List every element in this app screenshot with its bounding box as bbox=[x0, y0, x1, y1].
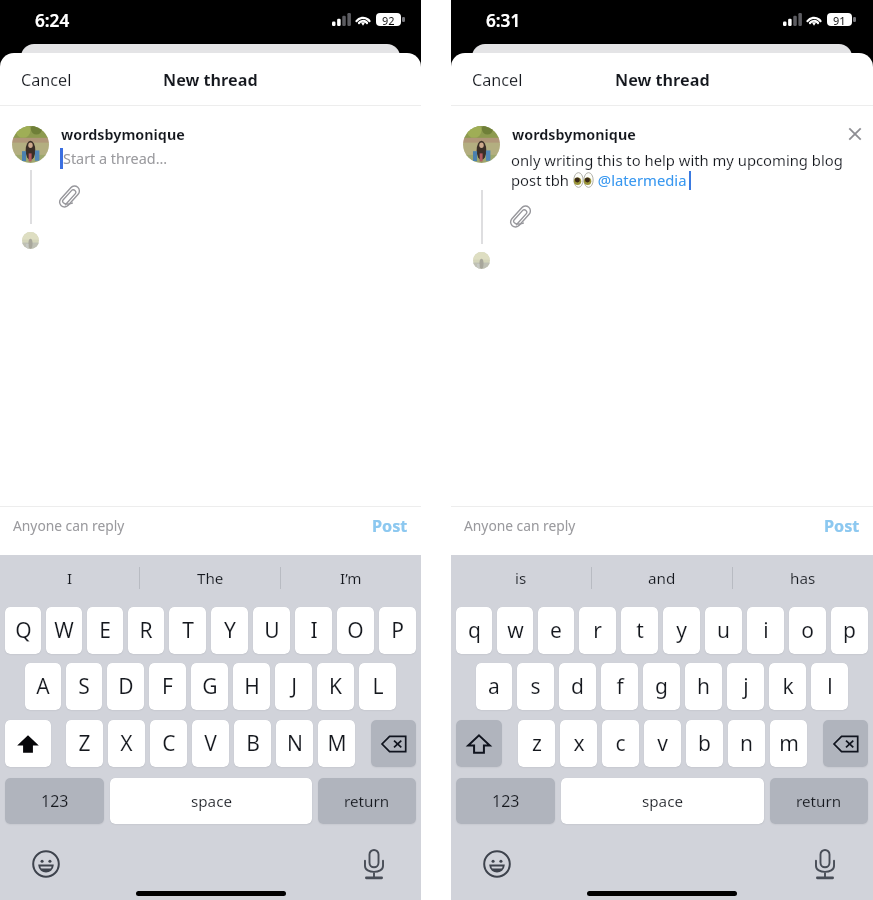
button[interactable]: The bbox=[140, 555, 280, 601]
button[interactable]: Y bbox=[211, 607, 248, 654]
staticText: B bbox=[246, 729, 260, 758]
button[interactable]: Cancel bbox=[0, 58, 90, 100]
button[interactable]: Emoji keyboard bbox=[32, 850, 60, 878]
staticText: @latermedia bbox=[594, 170, 687, 190]
button[interactable]: f bbox=[601, 663, 638, 710]
button[interactable]: Cancel bbox=[451, 58, 541, 100]
staticText: k bbox=[782, 672, 794, 701]
button[interactable]: Z bbox=[66, 720, 103, 767]
button[interactable]: E bbox=[87, 607, 123, 654]
button[interactable]: H bbox=[233, 663, 270, 710]
button[interactable]: Close bbox=[844, 123, 866, 145]
button[interactable]: Q bbox=[5, 607, 41, 654]
button[interactable]: V bbox=[192, 720, 229, 767]
button[interactable]: A bbox=[25, 663, 61, 710]
button[interactable]: m bbox=[770, 720, 807, 767]
button[interactable]: x bbox=[560, 720, 597, 767]
staticText: Z bbox=[78, 729, 91, 758]
button[interactable]: L bbox=[359, 663, 396, 710]
button[interactable]: Attach file bbox=[511, 207, 530, 226]
button[interactable]: l bbox=[811, 663, 848, 710]
button[interactable]: J bbox=[275, 663, 312, 710]
button[interactable]: c bbox=[602, 720, 639, 767]
button[interactable]: k bbox=[769, 663, 806, 710]
button[interactable]: r bbox=[579, 607, 616, 654]
staticText: is bbox=[515, 568, 527, 589]
button[interactable]: T bbox=[169, 607, 206, 654]
button[interactable]: Dictation bbox=[363, 849, 385, 880]
button[interactable]: q bbox=[456, 607, 492, 654]
button[interactable]: I bbox=[295, 607, 332, 654]
button[interactable]: 123 bbox=[5, 778, 104, 824]
button[interactable]: a bbox=[476, 663, 512, 710]
button[interactable]: s bbox=[517, 663, 554, 710]
button[interactable]: F bbox=[149, 663, 186, 710]
button[interactable]: h bbox=[685, 663, 722, 710]
staticText: N bbox=[287, 729, 303, 758]
button[interactable]: t bbox=[621, 607, 658, 654]
button[interactable]: D bbox=[107, 663, 144, 710]
button[interactable]: u bbox=[705, 607, 742, 654]
button[interactable]: U bbox=[253, 607, 290, 654]
staticText: G bbox=[202, 672, 218, 701]
button[interactable]: P bbox=[379, 607, 416, 654]
button[interactable]: Post bbox=[348, 505, 421, 547]
staticText: c bbox=[615, 729, 626, 758]
button[interactable]: Shift bbox=[456, 720, 502, 767]
button[interactable]: W bbox=[46, 607, 82, 654]
button[interactable]: Dictation bbox=[814, 849, 836, 880]
staticText: t bbox=[636, 616, 644, 645]
button[interactable]: e bbox=[538, 607, 574, 654]
button[interactable]: I’m bbox=[281, 555, 421, 601]
button[interactable]: y bbox=[663, 607, 700, 654]
button[interactable]: S bbox=[66, 663, 102, 710]
button[interactable]: i bbox=[747, 607, 784, 654]
button[interactable]: C bbox=[150, 720, 187, 767]
button[interactable]: I bbox=[0, 555, 139, 601]
button[interactable]: Post bbox=[800, 505, 873, 547]
staticText: and bbox=[648, 568, 676, 589]
button[interactable]: z bbox=[518, 720, 555, 767]
staticText: X bbox=[120, 729, 133, 758]
staticText: a bbox=[488, 672, 500, 701]
button[interactable]: O bbox=[337, 607, 374, 654]
staticText: New thread bbox=[615, 69, 710, 91]
staticText: 91 bbox=[833, 13, 846, 26]
button[interactable]: p bbox=[831, 607, 868, 654]
button[interactable]: b bbox=[686, 720, 723, 767]
button[interactable]: X bbox=[108, 720, 145, 767]
button[interactable]: Backspace bbox=[823, 720, 868, 767]
button[interactable]: Attach file bbox=[60, 187, 79, 206]
button[interactable]: has bbox=[733, 555, 873, 601]
button[interactable]: is bbox=[451, 555, 591, 601]
staticText: Cancel bbox=[21, 69, 72, 91]
button[interactable]: 123 bbox=[456, 778, 555, 824]
button[interactable]: space bbox=[561, 778, 764, 824]
staticText: s bbox=[530, 672, 541, 701]
button[interactable]: g bbox=[643, 663, 680, 710]
staticText: i bbox=[763, 616, 769, 645]
button[interactable]: n bbox=[728, 720, 765, 767]
staticText: return bbox=[344, 791, 390, 812]
button[interactable]: M bbox=[318, 720, 355, 767]
button[interactable]: d bbox=[559, 663, 596, 710]
button[interactable]: w bbox=[497, 607, 533, 654]
button[interactable]: Backspace bbox=[371, 720, 416, 767]
button[interactable]: N bbox=[276, 720, 313, 767]
button[interactable]: and bbox=[592, 555, 732, 601]
button[interactable]: B bbox=[234, 720, 271, 767]
button[interactable]: G bbox=[191, 663, 228, 710]
button[interactable]: v bbox=[644, 720, 681, 767]
button[interactable]: o bbox=[789, 607, 826, 654]
button[interactable]: return bbox=[318, 778, 416, 824]
button[interactable]: R bbox=[128, 607, 164, 654]
staticText: D bbox=[118, 672, 134, 701]
button[interactable]: Emoji keyboard bbox=[483, 850, 511, 878]
button[interactable]: j bbox=[727, 663, 764, 710]
button[interactable]: K bbox=[317, 663, 354, 710]
button[interactable]: space bbox=[110, 778, 312, 824]
staticText: I’m bbox=[340, 568, 362, 589]
other: Backspace bbox=[833, 734, 859, 754]
button[interactable]: return bbox=[770, 778, 868, 824]
button[interactable]: Shift bbox=[5, 720, 51, 767]
